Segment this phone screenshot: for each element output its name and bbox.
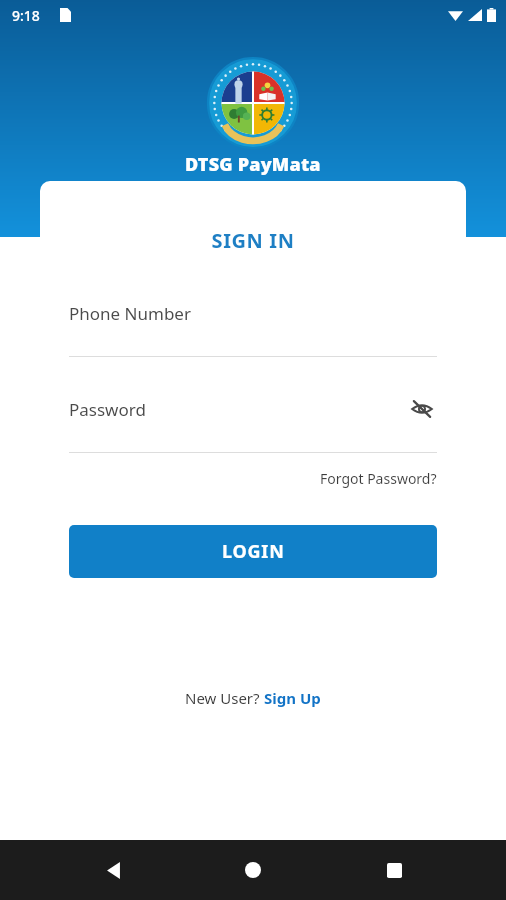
- staticText: Forgot Password?: [320, 469, 437, 488]
- staticText: 9:18: [12, 6, 40, 25]
- button[interactable]: Recent apps: [366, 842, 422, 898]
- staticText: DTSG PayMata: [185, 152, 321, 177]
- staticText: SIGN IN: [40, 227, 466, 254]
- staticText: Sign Up: [264, 688, 321, 708]
- button[interactable]: Home: [225, 842, 281, 898]
- button[interactable]: Phone Number: [69, 302, 437, 357]
- staticText: LOGIN: [222, 539, 285, 564]
- staticText: Phone Number: [69, 302, 191, 325]
- button[interactable]: Sign Up: [264, 688, 321, 708]
- button[interactable]: Password: [69, 398, 437, 453]
- button[interactable]: LOGIN: [69, 525, 437, 578]
- button[interactable]: Forgot Password?: [320, 469, 437, 488]
- button[interactable]: Back: [85, 842, 141, 898]
- staticText: Password: [69, 398, 146, 421]
- staticText: New User?: [185, 688, 264, 708]
- button[interactable]: Show password: [407, 394, 437, 424]
